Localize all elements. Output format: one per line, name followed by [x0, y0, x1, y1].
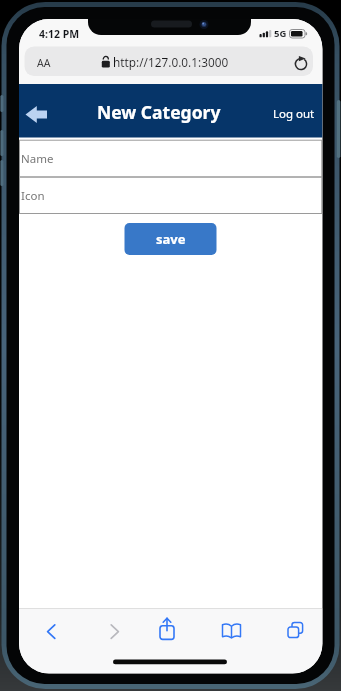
staticText: 4:12 PM [39, 27, 80, 41]
button[interactable] [19, 140, 323, 177]
staticText: 5G [274, 27, 287, 40]
button[interactable] [25, 47, 314, 77]
button[interactable] [102, 615, 128, 648]
staticText: Log out [273, 106, 315, 122]
button[interactable]: save [125, 223, 217, 255]
staticText: Icon [21, 188, 45, 204]
button[interactable]: Log out [268, 103, 319, 124]
staticText: save [156, 230, 186, 248]
staticText: AA [37, 56, 51, 70]
button[interactable] [38, 615, 64, 648]
button[interactable] [19, 177, 323, 214]
staticText: Name [21, 151, 54, 167]
button[interactable] [153, 613, 181, 648]
button[interactable] [283, 615, 312, 648]
staticText: New Category [97, 100, 221, 124]
staticText: http://127.0.0.1:3000 [113, 54, 229, 70]
button[interactable]: AA [33, 55, 55, 70]
button[interactable] [217, 615, 246, 648]
button[interactable] [22, 100, 54, 128]
